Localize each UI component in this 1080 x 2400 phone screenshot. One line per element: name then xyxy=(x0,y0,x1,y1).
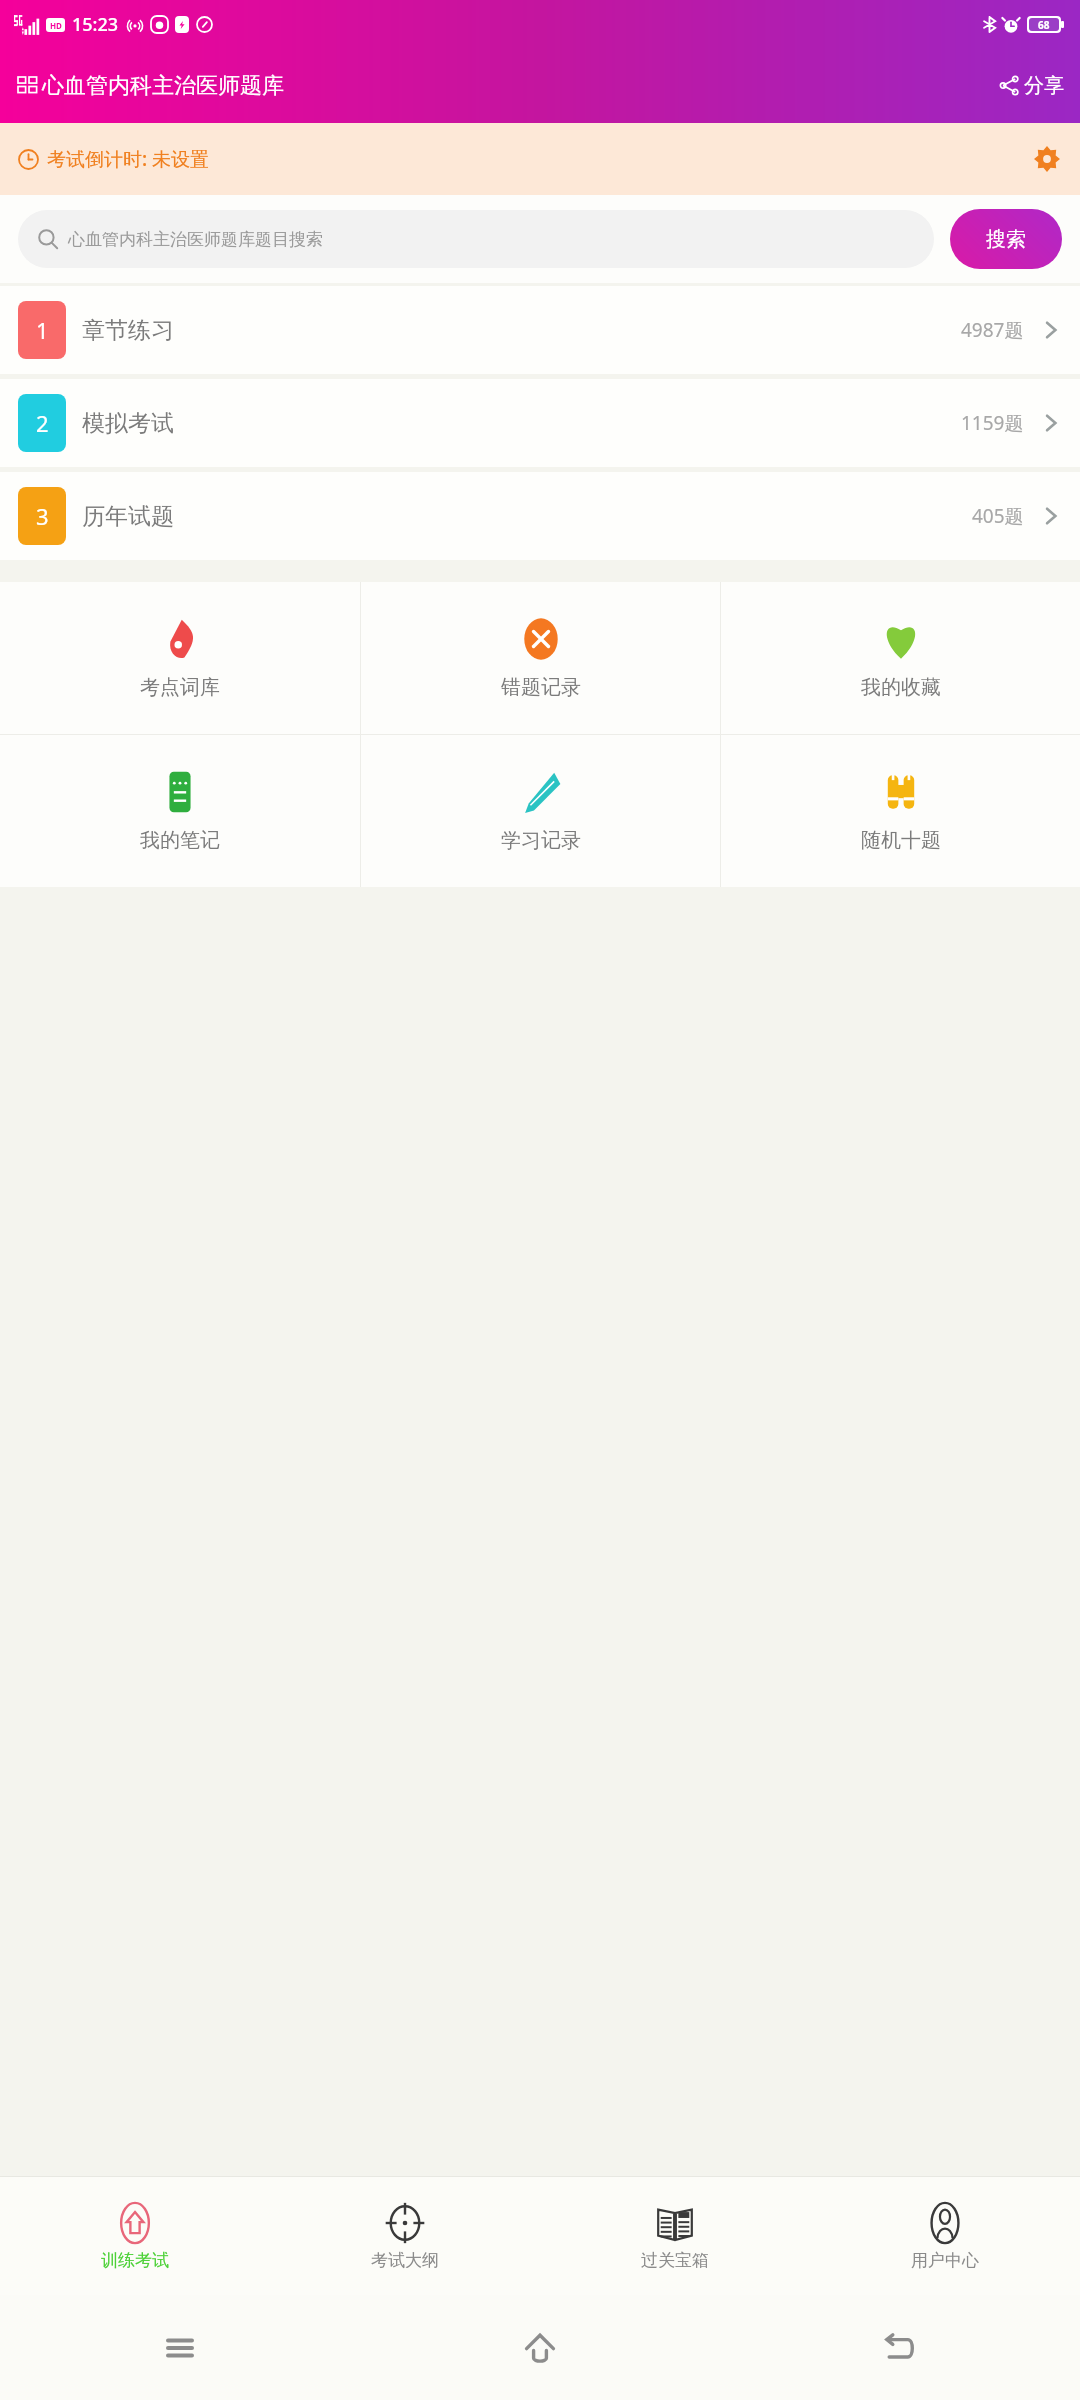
button[interactable]: 考点词库 xyxy=(0,582,360,734)
staticText: 用户中心 xyxy=(911,2250,979,2271)
staticText: 我的笔记 xyxy=(140,828,220,853)
staticText: 4987题 xyxy=(961,317,1024,343)
staticText: 搜索 xyxy=(986,227,1026,252)
button[interactable]: 过关宝箱 xyxy=(540,2177,810,2295)
button[interactable]: 1 xyxy=(0,286,1080,374)
staticText: 章节练习 xyxy=(82,316,174,345)
staticText: 训练考试 xyxy=(101,2250,169,2271)
staticText: 2 xyxy=(36,408,49,438)
button[interactable]: 考试大纲 xyxy=(270,2177,540,2295)
button[interactable]: 2 xyxy=(0,379,1080,467)
staticText: 15:23 xyxy=(72,12,119,37)
button[interactable]: 训练考试 xyxy=(0,2177,270,2295)
button[interactable]: Settings xyxy=(1028,140,1066,178)
staticText: HD xyxy=(50,20,62,31)
staticText: 过关宝箱 xyxy=(641,2250,709,2271)
button[interactable]: 学习记录 xyxy=(361,735,720,887)
button[interactable]: 随机十题 xyxy=(721,735,1080,887)
staticText: 考试大纲 xyxy=(371,2250,439,2271)
staticText: 心血管内科主治医师题库题目搜索 xyxy=(68,229,323,250)
staticText: 1 xyxy=(36,315,49,345)
button[interactable]: 考试倒计时: 未设置 xyxy=(0,123,1080,195)
button[interactable]: Home xyxy=(506,2314,574,2382)
staticText: 随机十题 xyxy=(861,828,941,853)
button[interactable]: Back xyxy=(867,2315,933,2381)
button[interactable]: 我的收藏 xyxy=(721,582,1080,734)
button[interactable]: 我的笔记 xyxy=(0,735,360,887)
staticText: 学习记录 xyxy=(501,828,581,853)
staticText: 405题 xyxy=(972,503,1024,529)
staticText: 心血管内科主治医师题库 xyxy=(42,72,284,100)
button[interactable]: 心血管内科主治医师题库题目搜索 xyxy=(18,210,934,268)
staticText: 考试倒计时: 未设置 xyxy=(47,146,210,172)
button[interactable]: 搜索 xyxy=(950,209,1062,269)
staticText: 我的收藏 xyxy=(861,675,941,700)
button[interactable]: Recent apps xyxy=(147,2315,213,2381)
button[interactable]: 3 xyxy=(0,472,1080,560)
staticText: 68 xyxy=(1038,18,1050,31)
staticText: 分享 xyxy=(1024,73,1064,98)
staticText: 考点词库 xyxy=(140,675,220,700)
staticText: 1159题 xyxy=(961,410,1024,436)
staticText: 模拟考试 xyxy=(82,409,174,438)
staticText: 错题记录 xyxy=(501,675,581,700)
staticText: 历年试题 xyxy=(82,502,174,531)
staticText: 3 xyxy=(36,501,49,531)
button[interactable]: 用户中心 xyxy=(810,2177,1080,2295)
button[interactable]: 错题记录 xyxy=(361,582,720,734)
button[interactable]: 分享 xyxy=(984,63,1080,108)
